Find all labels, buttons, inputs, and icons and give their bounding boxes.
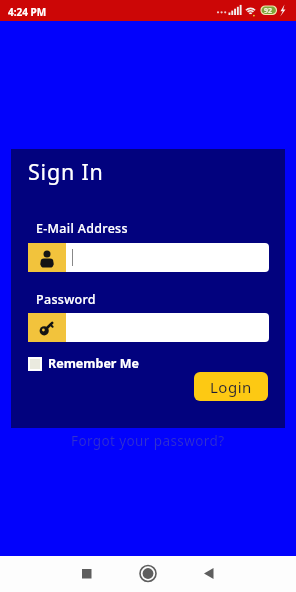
staticText: Sign In bbox=[28, 157, 104, 186]
button[interactable] bbox=[0, 556, 98, 592]
button[interactable]: Login bbox=[194, 372, 268, 401]
button[interactable] bbox=[28, 313, 269, 342]
staticText: 92 bbox=[264, 6, 273, 16]
button[interactable] bbox=[28, 243, 269, 272]
button[interactable] bbox=[98, 556, 197, 592]
staticText: E-Mail Address bbox=[36, 220, 128, 237]
button[interactable] bbox=[197, 556, 296, 592]
staticText: Remember Me bbox=[48, 355, 139, 372]
staticText: 4:24 PM bbox=[8, 5, 47, 19]
staticText: Password bbox=[36, 291, 96, 308]
staticText: Login bbox=[210, 377, 252, 397]
button[interactable]: Remember Me bbox=[28, 355, 139, 372]
button[interactable]: Forgot your password? bbox=[71, 432, 225, 450]
